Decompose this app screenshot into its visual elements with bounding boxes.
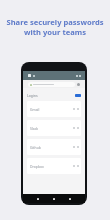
button[interactable]: Slack (27, 120, 81, 136)
button[interactable]: Dropbox (27, 158, 81, 174)
button[interactable]: Gmail (27, 101, 81, 117)
staticText: Share securely passwords with your teams (3, 17, 107, 37)
button[interactable]: Navigation button (53, 198, 55, 200)
button[interactable]: Github (27, 139, 81, 155)
staticText: Dropbox (30, 164, 44, 169)
button[interactable]: Navigation button (69, 198, 71, 200)
staticText: Slack (30, 126, 39, 131)
staticText: Gmail (30, 107, 40, 112)
staticText: Logins (27, 93, 38, 98)
button[interactable]: New (75, 94, 81, 97)
button[interactable]: Navigation button (37, 198, 39, 200)
staticText: Github (30, 145, 41, 150)
